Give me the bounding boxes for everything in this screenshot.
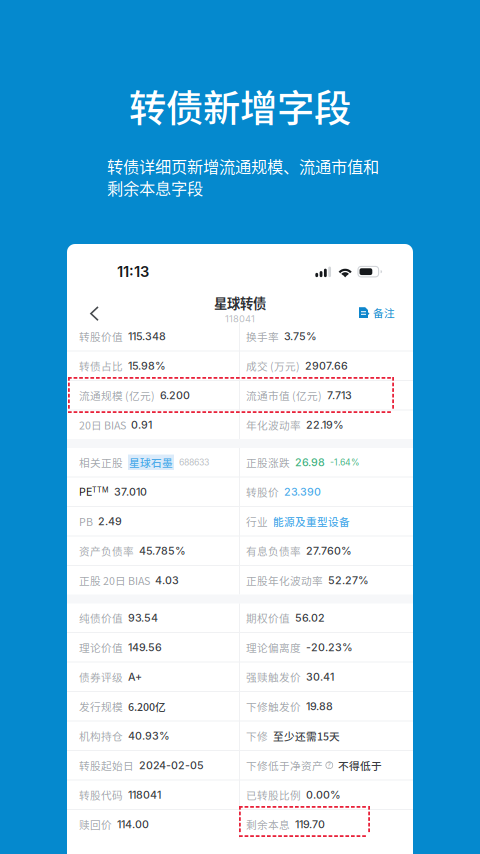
staticText: 纯债价值 [79,610,123,625]
staticText: 93.54 [128,611,158,624]
staticText: 149.56 [128,641,162,654]
staticText: 理论偏离度 [246,639,301,655]
staticText: 688633 [179,457,209,467]
staticText: 理论价值 [79,639,123,655]
staticText: 流通规模 (亿元) [79,387,155,403]
staticText: 星球转债 [214,293,266,312]
staticText: 流通市值 (亿元) [246,387,322,403]
staticText: 转股起始日 [79,757,134,773]
staticText: 19.88 [306,700,333,713]
staticText: 22.19% [306,418,344,431]
staticText: 下修 [246,728,268,743]
staticText: 机构持仓 [79,728,123,743]
staticText: 下修低于净资产 [246,757,323,773]
staticText: 赎回价 [79,816,112,832]
staticText: 7.713 [327,389,352,402]
staticText: 转股价值 [79,328,123,344]
staticText: 27.760% [306,544,352,557]
button[interactable]: 返回 [67,288,113,322]
staticText: -20.23% [306,641,353,654]
staticText: 下修触发价 [246,698,301,714]
staticText: 星球石墨 [129,454,173,470]
staticText: 能源及重型设备 [273,513,350,529]
staticText: 正股 20日 BIAS [79,572,150,588]
staticText: 40.93% [128,729,170,742]
staticText: 37.010 [114,485,147,498]
staticText: 行业 [246,513,268,529]
staticText: 期权价值 [246,610,290,625]
staticText: A+ [128,670,142,683]
staticText: 转债新增字段 [129,79,351,133]
staticText: 已转股比例 [246,787,301,802]
staticText: 45.785% [139,544,186,557]
staticText: 2907.66 [305,359,348,372]
staticText: 0.91 [131,418,152,431]
staticText: 115.348 [128,330,166,343]
staticText: 2024-02-05 [139,759,204,772]
staticText: 30.41 [306,670,334,683]
button[interactable]: 备注 [347,288,413,322]
staticText: 6.200 [160,389,190,402]
staticText: 20日 BIAS [79,417,126,432]
staticText: 4.03 [155,574,179,587]
staticText: 不得低于 [338,757,382,773]
staticText: 强赎触发价 [246,669,301,684]
staticText: 3.75% [284,330,317,343]
staticText: 56.02 [295,611,325,624]
staticText: 23.390 [284,485,321,498]
staticText: PETTM [79,485,109,498]
staticText: 转股代码 [79,787,123,802]
staticText: 转债详细页新增流通规模、流通市值和 [107,154,379,178]
staticText: 备注 [373,305,395,320]
staticText: 相关正股 [79,454,123,470]
staticText: 资产负债率 [79,543,134,558]
staticText: 成交 (万元) [246,358,300,373]
staticText: PB [79,513,93,529]
staticText: 发行规模 [79,698,123,714]
staticText: 2.49 [98,515,122,528]
staticText: 转股价 [246,484,279,499]
staticText: 118041 [128,788,161,801]
staticText: 换手率 [246,328,279,344]
staticText: 11:13 [117,263,149,280]
staticText: 52.27% [328,574,369,587]
staticText: 剩余本息字段 [107,176,203,199]
staticText: 转债占比 [79,358,123,373]
staticText: 债券评级 [79,669,123,684]
staticText: 15.98% [128,359,166,372]
staticText: ? [327,761,331,769]
staticText: 正股年化波动率 [246,572,323,588]
staticText: 至少还需15天 [273,728,340,743]
staticText: 正股涨跌 [246,454,290,470]
staticText: 26.98 [295,456,325,469]
staticText: -1.64% [330,457,360,467]
staticText: 119.70 [295,818,325,831]
staticText: 118041 [225,313,255,325]
staticText: 有息负债率 [246,543,301,558]
staticText: 剩余本息 [246,816,290,832]
staticText: 0.00% [306,788,341,801]
staticText: 114.00 [117,818,149,831]
staticText: 6.200亿 [128,698,166,714]
staticText: 年化波动率 [246,417,301,432]
